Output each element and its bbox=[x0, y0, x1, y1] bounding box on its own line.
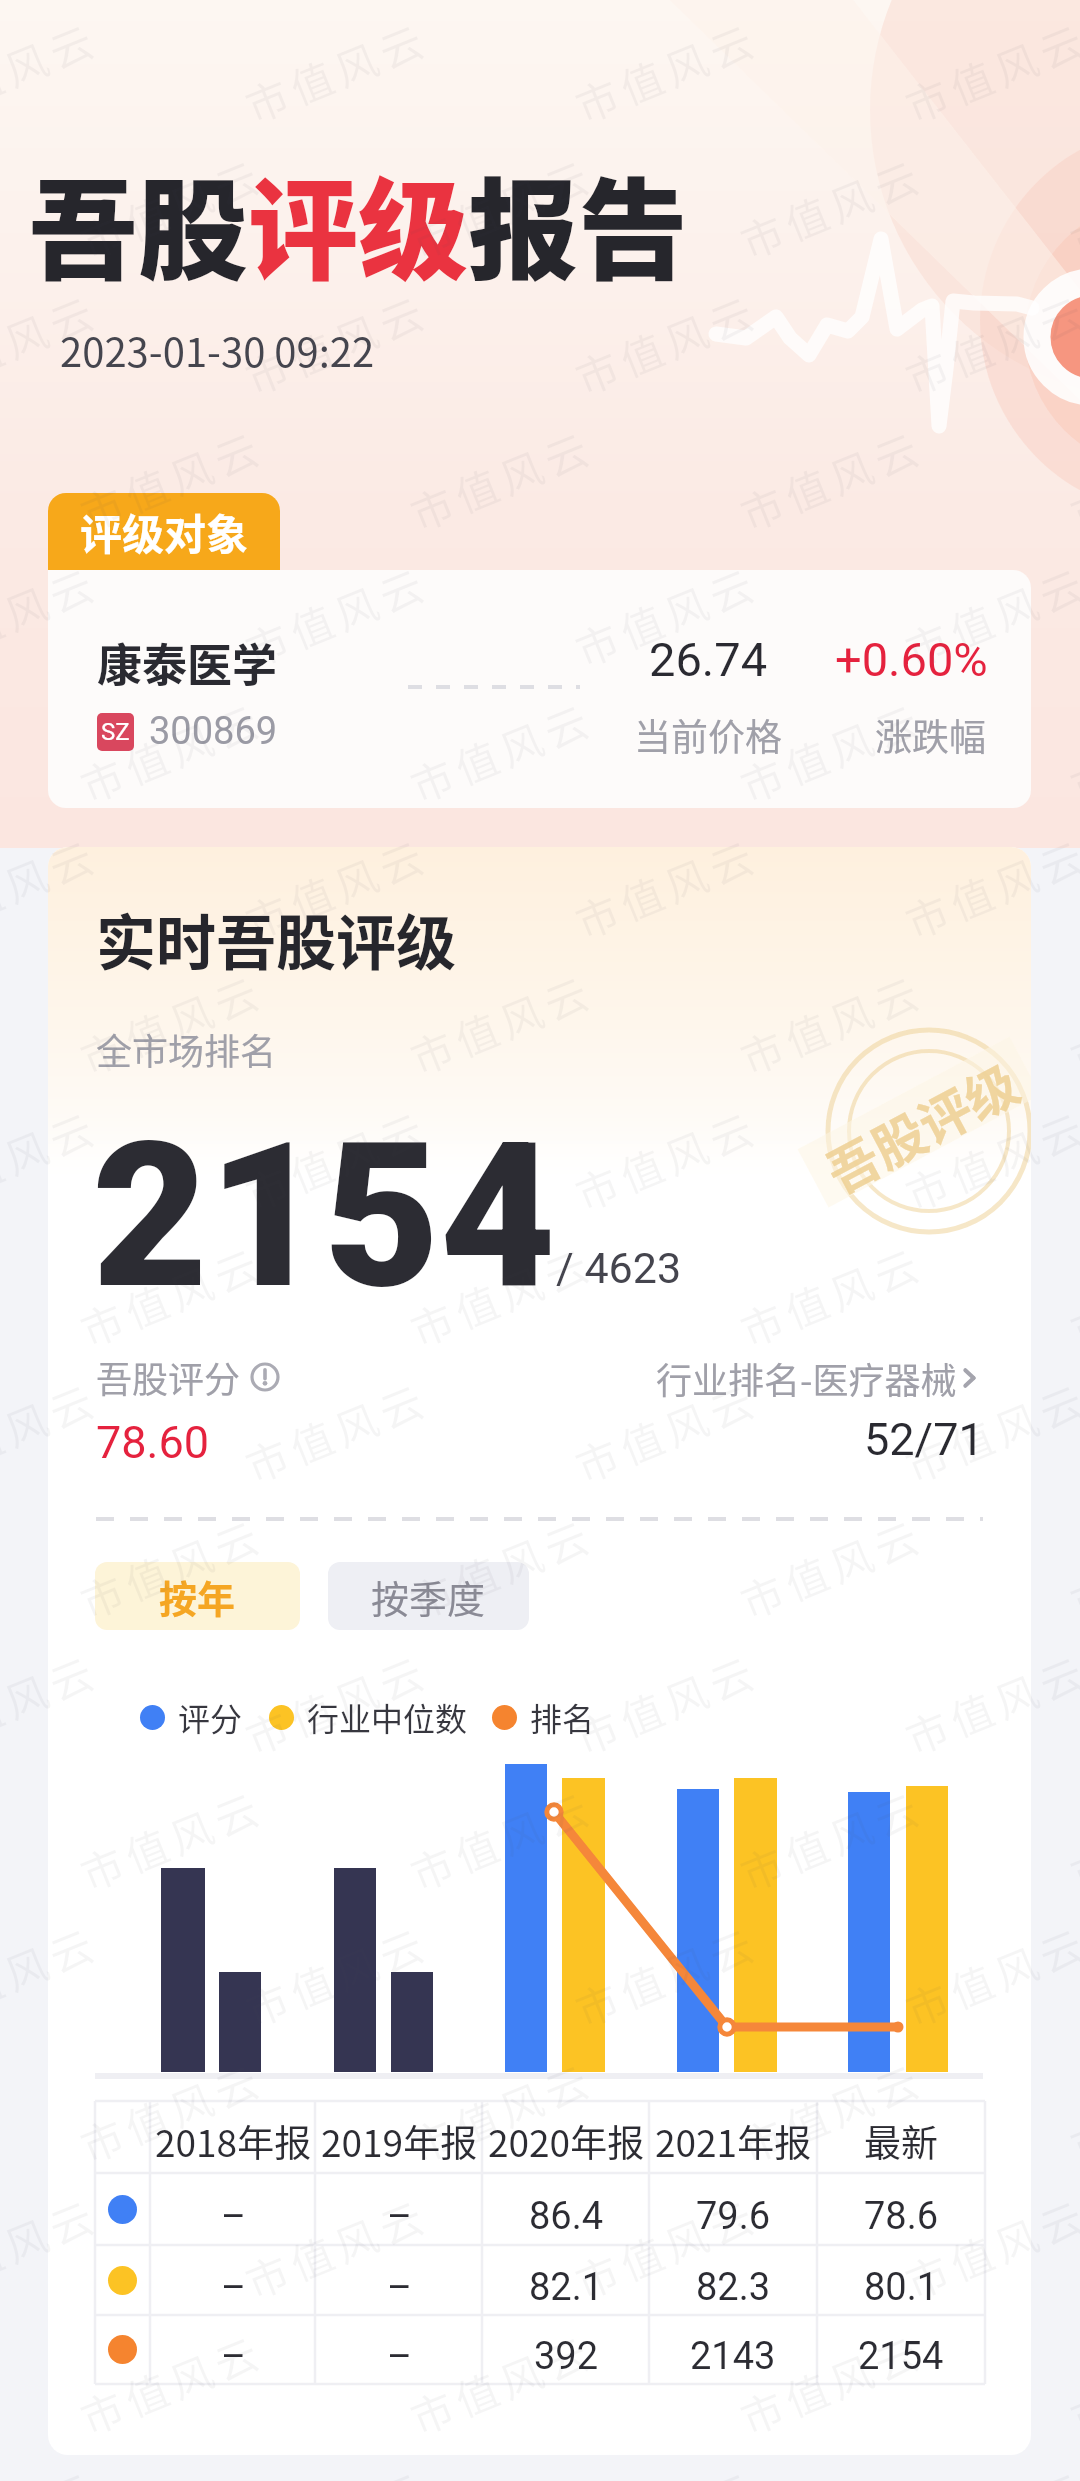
staticText: – bbox=[387, 2265, 412, 2310]
staticText: 市值风云 bbox=[566, 1366, 767, 1495]
staticText: 78.6 bbox=[864, 2194, 939, 2239]
staticText: 82.3 bbox=[696, 2265, 771, 2310]
staticText: 市值风云 bbox=[731, 686, 932, 815]
staticText: 市值风云 bbox=[401, 2046, 602, 2175]
staticText: 市值风云 bbox=[401, 2318, 602, 2447]
staticText: 市值风云 bbox=[896, 278, 1080, 407]
staticText: 市值风云 bbox=[236, 1638, 437, 1767]
staticText: 市值风云 bbox=[71, 414, 272, 543]
staticText: 市值风云 bbox=[401, 1774, 602, 1903]
staticText: 市值风云 bbox=[401, 142, 602, 271]
staticText: 300869 bbox=[149, 709, 278, 754]
staticText: 26.74 bbox=[649, 632, 768, 687]
staticText: 市值风云 bbox=[896, 1094, 1080, 1223]
staticText: – bbox=[221, 2334, 246, 2379]
staticText: 市值风云 bbox=[71, 1774, 272, 1903]
staticText: 市值风云 bbox=[1061, 142, 1080, 271]
staticText: 市值风云 bbox=[401, 1502, 602, 1631]
staticText: 市值风云 bbox=[566, 550, 767, 679]
staticText: 吾股 bbox=[28, 143, 248, 302]
staticText: 2021年报 bbox=[655, 2114, 812, 2168]
staticText: 按季度 bbox=[371, 1569, 486, 1624]
staticText: 2020年报 bbox=[488, 2114, 645, 2168]
staticText: 吾股评级 bbox=[812, 1044, 1027, 1200]
other: 查看行业排名 bbox=[957, 1365, 983, 1391]
staticText: – bbox=[387, 2194, 412, 2239]
staticText: 市值风云 bbox=[71, 1230, 272, 1359]
staticText: 行业排名-医疗器械 bbox=[656, 1352, 957, 1404]
staticText: – bbox=[387, 2334, 412, 2379]
staticText: 市值风云 bbox=[71, 2318, 272, 2447]
staticText: 市值风云 bbox=[401, 686, 602, 815]
staticText: 市值风云 bbox=[71, 1502, 272, 1631]
button[interactable]: 按季度 bbox=[328, 1562, 529, 1630]
staticText: 康泰医学 bbox=[97, 630, 278, 695]
staticText: 市值风云 bbox=[896, 1638, 1080, 1767]
staticText: 最新 bbox=[864, 2114, 938, 2168]
staticText: 市值风云 bbox=[236, 278, 437, 407]
staticText: 市值风云 bbox=[236, 1910, 437, 2039]
staticText: 市值风云 bbox=[71, 142, 272, 271]
staticText: 市值风云 bbox=[0, 278, 107, 407]
staticText: 市值风云 bbox=[731, 142, 932, 271]
staticText: 市值风云 bbox=[896, 2182, 1080, 2311]
staticText: – bbox=[221, 2265, 246, 2310]
staticText: 2154 bbox=[92, 1099, 556, 1333]
staticText: 市值风云 bbox=[401, 958, 602, 1087]
staticText: 市值风云 bbox=[896, 1910, 1080, 2039]
staticText: 评级对象 bbox=[80, 501, 249, 562]
button[interactable]: 按年 bbox=[95, 1562, 300, 1630]
button[interactable]: 评级对象 bbox=[48, 493, 280, 570]
staticText: 市值风云 bbox=[71, 958, 272, 1087]
staticText: +0.60% bbox=[835, 632, 988, 687]
staticText: 市值风云 bbox=[0, 1638, 107, 1767]
staticText: 实时吾股评级 bbox=[96, 895, 456, 982]
staticText: 市值风云 bbox=[731, 2318, 932, 2447]
staticText: 市值风云 bbox=[566, 1094, 767, 1223]
staticText: 市值风云 bbox=[236, 2182, 437, 2311]
staticText: 市值风云 bbox=[731, 2046, 932, 2175]
staticText: 吾股评分 bbox=[96, 1351, 241, 1403]
staticText: 2023-01-30 09:22 bbox=[60, 321, 375, 379]
staticText: 市值风云 bbox=[896, 1366, 1080, 1495]
staticText: 市值风云 bbox=[731, 1230, 932, 1359]
button[interactable]: 康泰医学 bbox=[48, 570, 1031, 808]
staticText: 市值风云 bbox=[0, 1366, 107, 1495]
button[interactable]: 行业排名-医疗器械 bbox=[656, 1352, 983, 1404]
staticText: 392 bbox=[534, 2334, 599, 2379]
staticText: / 4623 bbox=[556, 1243, 682, 1293]
staticText: 市值风云 bbox=[236, 822, 437, 951]
staticText: 市值风云 bbox=[236, 1366, 437, 1495]
staticText: 市值风云 bbox=[896, 822, 1080, 951]
staticText: 市值风云 bbox=[1061, 414, 1080, 543]
staticText: 市值风云 bbox=[236, 1094, 437, 1223]
staticText: 82.1 bbox=[529, 2265, 604, 2310]
staticText: 行业中位数 bbox=[307, 1694, 468, 1740]
staticText: 2143 bbox=[690, 2334, 776, 2379]
staticText: 市值风云 bbox=[566, 1910, 767, 2039]
other: 评分说明 bbox=[250, 1362, 280, 1392]
staticText: 78.60 bbox=[96, 1416, 210, 1469]
staticText: 市值风云 bbox=[0, 2182, 107, 2311]
staticText: 市值风云 bbox=[566, 2182, 767, 2311]
staticText: 市值风云 bbox=[71, 686, 272, 815]
staticText: 86.4 bbox=[529, 2194, 604, 2239]
staticText: 2018年报 bbox=[155, 2114, 312, 2168]
staticText: 市值风云 bbox=[566, 1638, 767, 1767]
staticText: 涨跌幅 bbox=[875, 708, 986, 762]
